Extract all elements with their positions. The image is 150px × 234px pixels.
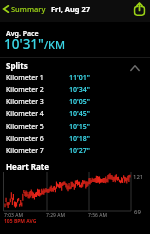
staticText: Fri, Aug 27 (51, 4, 91, 14)
staticText: 7:29 AM (46, 212, 65, 219)
staticText: Avg. Pace (6, 29, 39, 39)
staticText: 10'27" (69, 146, 90, 156)
staticText: 10'05" (69, 97, 90, 107)
button[interactable]: Kilometer 4 (0, 108, 150, 120)
staticText: Splits (6, 60, 28, 71)
staticText: 105 BPM AVG (4, 218, 37, 225)
button[interactable]: Kilometer 6 (0, 133, 150, 145)
staticText: 10'45" (69, 109, 90, 119)
staticText: 10'18" (69, 134, 90, 144)
staticText: Kilometer 4 (6, 109, 44, 119)
staticText: Kilometer 3 (6, 97, 44, 107)
staticText: Summary (11, 4, 46, 14)
button[interactable]: Splits (0, 60, 150, 71)
button[interactable]: Kilometer 3 (0, 96, 150, 108)
staticText: 10'15" (69, 122, 90, 132)
button[interactable]: Kilometer 7 (0, 145, 150, 157)
staticText: Kilometer 7 (6, 146, 44, 156)
staticText: 10'31"/KM (4, 35, 66, 53)
staticText: Kilometer 5 (6, 122, 44, 132)
staticText: 121 (133, 173, 144, 181)
button[interactable]: Kilometer 1 (0, 72, 150, 84)
button[interactable]: Summary (2, 1, 47, 16)
staticText: Kilometer 1 (6, 73, 44, 83)
staticText: 69 (134, 208, 141, 216)
button[interactable]: Kilometer 5 (0, 121, 150, 133)
button[interactable]: Share (131, 1, 147, 16)
staticText: Heart Rate (6, 161, 50, 172)
staticText: 7:03 AM (4, 212, 23, 219)
staticText: 10'34" (69, 85, 90, 95)
staticText: 7:56 AM (88, 212, 107, 219)
button[interactable]: Kilometer 2 (0, 84, 150, 96)
staticText: 11'01" (69, 73, 90, 83)
staticText: Kilometer 2 (6, 85, 44, 95)
staticText: Kilometer 6 (6, 134, 44, 144)
